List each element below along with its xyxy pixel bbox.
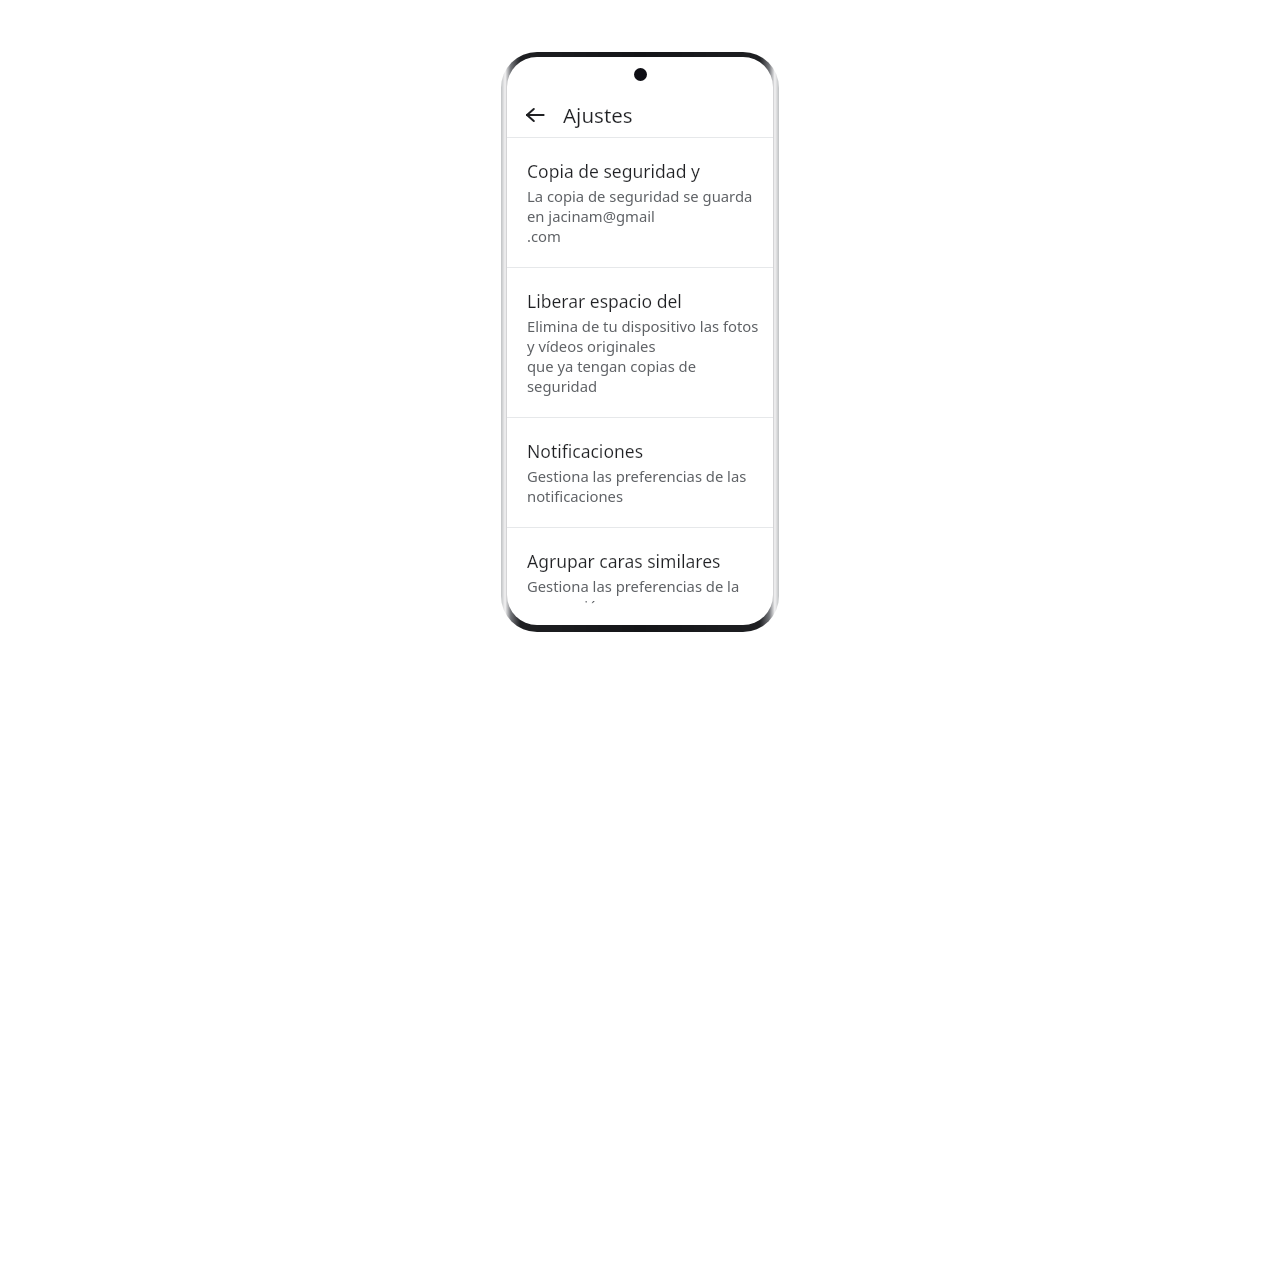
button[interactable]: Copia de seguridad y sincronización [507,138,773,268]
staticText: Gestiona las preferencias de las notific… [527,466,759,506]
button[interactable]: Back [518,98,552,132]
staticText: Agrupar caras similares [527,549,721,573]
button[interactable]: Notificaciones [507,418,773,528]
staticText: Gestiona las preferencias de la agrupaci… [527,576,759,604]
button[interactable]: Agrupar caras similares [507,528,773,625]
staticText: La copia de seguridad se guarda en jacin… [527,186,759,226]
staticText: que ya tengan copias de seguridad [527,356,759,396]
staticText: Elimina de tu dispositivo las fotos y ví… [527,316,759,356]
staticText: Copia de seguridad y sincronización [527,159,759,183]
staticText: Ajustes [563,101,633,129]
staticText: .com [527,226,561,246]
staticText: Notificaciones [527,439,644,463]
button[interactable]: Liberar espacio del dispositivo [507,268,773,418]
staticText: Liberar espacio del dispositivo [527,289,759,313]
